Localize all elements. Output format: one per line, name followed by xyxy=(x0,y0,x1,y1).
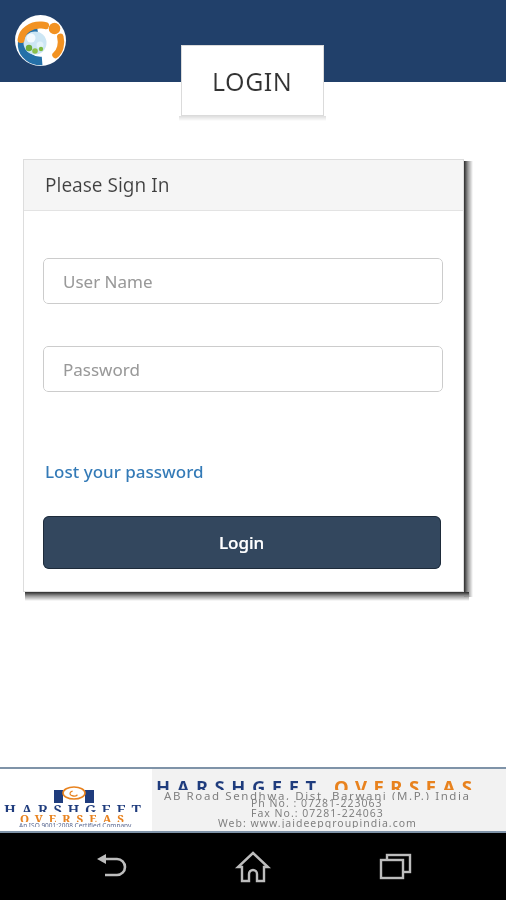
staticText: Ph No. : 07281-223063 xyxy=(251,796,383,807)
staticText: An ISO 9001:2008 Certified Company xyxy=(19,821,132,827)
staticText: LOGIN xyxy=(212,64,293,98)
staticText: HARSHGEET OVERSEAS xyxy=(156,774,479,790)
staticText: Please Sign In xyxy=(45,172,170,198)
staticText: HARSHGEET xyxy=(4,799,147,812)
button[interactable]: Login xyxy=(43,516,441,569)
staticText: AB Road Sendhwa, Dist. Barwani (M.P.) In… xyxy=(164,788,471,800)
staticText: Login xyxy=(219,531,265,554)
staticText: Lost your password xyxy=(45,460,204,483)
button[interactable] xyxy=(232,846,274,888)
button[interactable]: HARSHGEET xyxy=(0,767,506,833)
button[interactable]: Password xyxy=(43,346,443,392)
button[interactable] xyxy=(374,846,416,888)
staticText: Fax No.: 07281-224063 xyxy=(251,806,384,817)
staticText: Web: www.jaideepgroupindia.com xyxy=(218,816,417,828)
button[interactable] xyxy=(92,846,134,888)
button[interactable]: LOGIN xyxy=(181,45,324,116)
staticText: OVERSEAS xyxy=(20,811,131,822)
button[interactable]: Lost your password xyxy=(43,458,206,485)
staticText: User Name xyxy=(63,270,153,293)
staticText: Password xyxy=(63,358,140,381)
button[interactable]: User Name xyxy=(43,258,443,304)
